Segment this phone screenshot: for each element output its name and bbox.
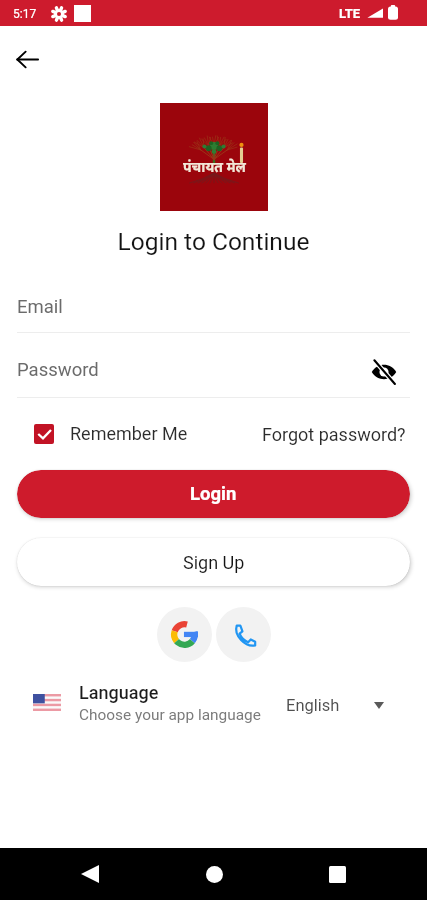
staticText: Sign Up xyxy=(183,552,245,573)
staticText: Remember Me xyxy=(70,423,188,444)
staticText: Language xyxy=(79,682,159,703)
button[interactable]: Remember Me xyxy=(34,423,188,444)
button[interactable]: Back xyxy=(69,853,111,895)
staticText: Forgot password? xyxy=(262,424,406,445)
button[interactable]: Sign in with phone xyxy=(216,607,271,662)
button[interactable]: Language xyxy=(0,676,427,720)
staticText: Email xyxy=(17,296,63,318)
staticText: LTE xyxy=(339,6,361,21)
button[interactable]: Recent apps xyxy=(316,853,358,895)
staticText: Choose your app language xyxy=(79,706,261,724)
button[interactable]: Sign in with Google xyxy=(157,607,212,662)
staticText: Password xyxy=(17,359,99,381)
button[interactable]: Password xyxy=(17,351,357,397)
staticText: English xyxy=(286,696,340,715)
staticText: पंचायत मेल xyxy=(183,157,246,176)
button[interactable]: Login xyxy=(17,470,410,518)
staticText: 5:17 xyxy=(13,7,37,21)
button[interactable]: Sign Up xyxy=(17,538,410,586)
staticText: Login xyxy=(190,483,237,505)
button[interactable]: Home xyxy=(193,853,235,895)
button[interactable]: Forgot password? xyxy=(262,424,406,445)
button[interactable]: Back xyxy=(5,37,49,81)
button[interactable]: Email xyxy=(17,288,410,332)
staticText: Login to Continue xyxy=(0,227,427,256)
button[interactable]: Toggle password visibility xyxy=(366,354,402,390)
